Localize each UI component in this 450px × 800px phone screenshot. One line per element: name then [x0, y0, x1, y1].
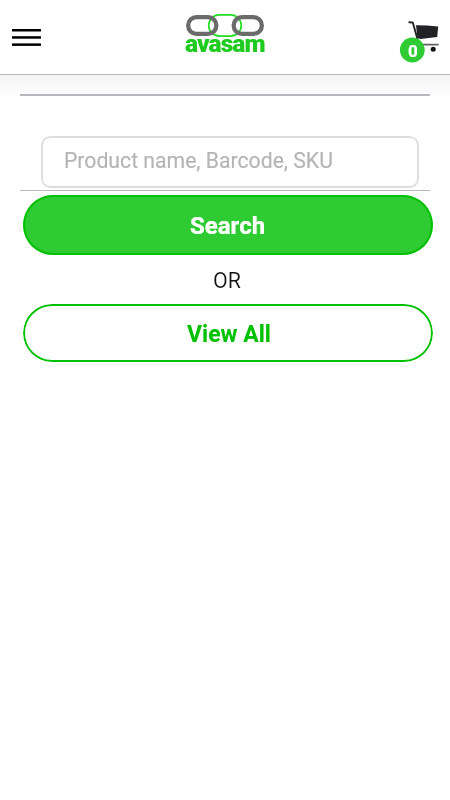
button[interactable]: Open navigation menu: [6, 16, 46, 56]
button[interactable]: Search: [23, 195, 433, 255]
button[interactable]: Product name, Barcode, SKU: [41, 136, 419, 188]
staticText: avasam: [185, 29, 265, 58]
staticText: 0: [408, 41, 418, 61]
button[interactable]: Shopping cart, 0 items: [395, 12, 450, 68]
staticText: View All: [187, 321, 271, 348]
button[interactable]: View All: [23, 304, 433, 362]
staticText: Search: [190, 212, 266, 240]
button[interactable]: Avasam home: [165, 15, 285, 67]
staticText: OR: [213, 268, 241, 293]
staticText: Product name, Barcode, SKU: [64, 148, 333, 173]
